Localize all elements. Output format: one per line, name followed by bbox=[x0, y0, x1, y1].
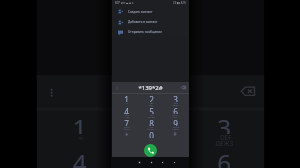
staticText: 4 bbox=[72, 146, 87, 168]
staticText: ДЕЖЗ bbox=[172, 104, 179, 106]
staticText: 1 bbox=[72, 110, 87, 134]
button[interactable]: 6 bbox=[187, 146, 258, 168]
staticText: Добавить в контакт bbox=[128, 20, 158, 24]
staticText: ИЙКЛ bbox=[123, 116, 130, 118]
staticText: 3 bbox=[173, 94, 178, 102]
button[interactable]: Recents bbox=[138, 161, 141, 164]
staticText: DEF bbox=[220, 134, 232, 140]
button[interactable]: 6 bbox=[163, 106, 187, 118]
staticText: ВСР мтс ▬ ▪ ✈ bbox=[115, 1, 135, 5]
staticText: АБВГ bbox=[148, 104, 154, 106]
staticText: Отправить сообщение bbox=[128, 30, 162, 34]
staticText: PQRS bbox=[124, 126, 130, 128]
staticText: DEF bbox=[174, 102, 178, 104]
button[interactable]: 5 bbox=[139, 106, 163, 118]
staticText: МНОП bbox=[148, 116, 155, 118]
staticText: 2 bbox=[146, 110, 161, 134]
staticText: ABC bbox=[149, 102, 154, 104]
button[interactable]: Home bbox=[150, 161, 153, 164]
button[interactable]: 3 bbox=[163, 94, 187, 106]
staticText: 5 bbox=[146, 146, 161, 168]
staticText: АБВГ bbox=[143, 140, 161, 146]
staticText: *139*2# bbox=[138, 84, 163, 92]
button[interactable]: Keypad options bbox=[46, 87, 58, 99]
button[interactable]: 9 bbox=[163, 118, 187, 130]
staticText: # bbox=[173, 131, 177, 138]
staticText: 1 bbox=[124, 94, 129, 102]
staticText: *139*2# bbox=[114, 81, 187, 105]
staticText: ABC bbox=[146, 134, 161, 140]
button[interactable]: 2 bbox=[117, 110, 187, 146]
staticText: ЬЭЮЯ bbox=[172, 128, 179, 130]
staticText: JKL bbox=[150, 114, 154, 116]
staticText: Создать контакт bbox=[128, 10, 153, 14]
staticText: WXYZ bbox=[173, 126, 179, 128]
button[interactable]: Keypad options bbox=[115, 86, 119, 90]
staticText: 9 bbox=[173, 118, 178, 126]
staticText: 7 bbox=[124, 118, 129, 126]
button[interactable]: Отправить сообщение bbox=[112, 27, 189, 37]
staticText: ∗ bbox=[124, 131, 129, 137]
button[interactable]: Back bbox=[161, 161, 164, 164]
button[interactable]: 1 bbox=[43, 110, 117, 146]
button[interactable]: Backspace bbox=[181, 85, 186, 90]
button[interactable]: Call bbox=[144, 144, 157, 157]
staticText: + bbox=[151, 138, 153, 140]
staticText: 2 bbox=[149, 94, 154, 102]
staticText: ФХЦЧ bbox=[123, 128, 130, 130]
button[interactable]: # bbox=[163, 130, 187, 142]
button[interactable]: 8 bbox=[139, 118, 163, 130]
button[interactable]: 1 bbox=[114, 94, 139, 106]
button[interactable]: 2 bbox=[139, 94, 163, 106]
button[interactable]: 5 bbox=[117, 146, 187, 168]
staticText: Сб ▮▮ 82% bbox=[173, 1, 186, 5]
button[interactable]: 7 bbox=[114, 118, 139, 130]
button[interactable]: Keyboard bbox=[173, 161, 176, 164]
staticText: 0 bbox=[149, 130, 154, 138]
staticText: ДЕЖЗ bbox=[214, 140, 235, 146]
staticText: 6 bbox=[173, 106, 178, 114]
button[interactable]: 0 bbox=[139, 130, 163, 142]
button[interactable]: Backspace bbox=[240, 84, 255, 99]
staticText: 8 bbox=[149, 118, 154, 126]
button[interactable]: 4 bbox=[43, 146, 117, 168]
button[interactable]: Добавить в контакт bbox=[112, 17, 189, 27]
button[interactable]: 4 bbox=[114, 106, 139, 118]
button[interactable]: Создать контакт bbox=[112, 6, 189, 17]
staticText: 6 bbox=[217, 146, 232, 168]
staticText: ∞ bbox=[126, 102, 128, 104]
staticText: ∞ bbox=[78, 134, 84, 140]
staticText: GHI bbox=[125, 114, 129, 116]
staticText: 3 bbox=[217, 110, 232, 134]
staticText: 4 bbox=[124, 106, 129, 114]
button[interactable]: ∗ bbox=[114, 130, 139, 142]
staticText: MNO bbox=[172, 114, 178, 116]
staticText: TUV bbox=[149, 126, 154, 128]
staticText: РСТУ bbox=[172, 116, 178, 118]
button[interactable]: 3 bbox=[187, 110, 258, 146]
staticText: ШЩЪЫ bbox=[147, 128, 155, 130]
staticText: 5 bbox=[149, 106, 154, 114]
